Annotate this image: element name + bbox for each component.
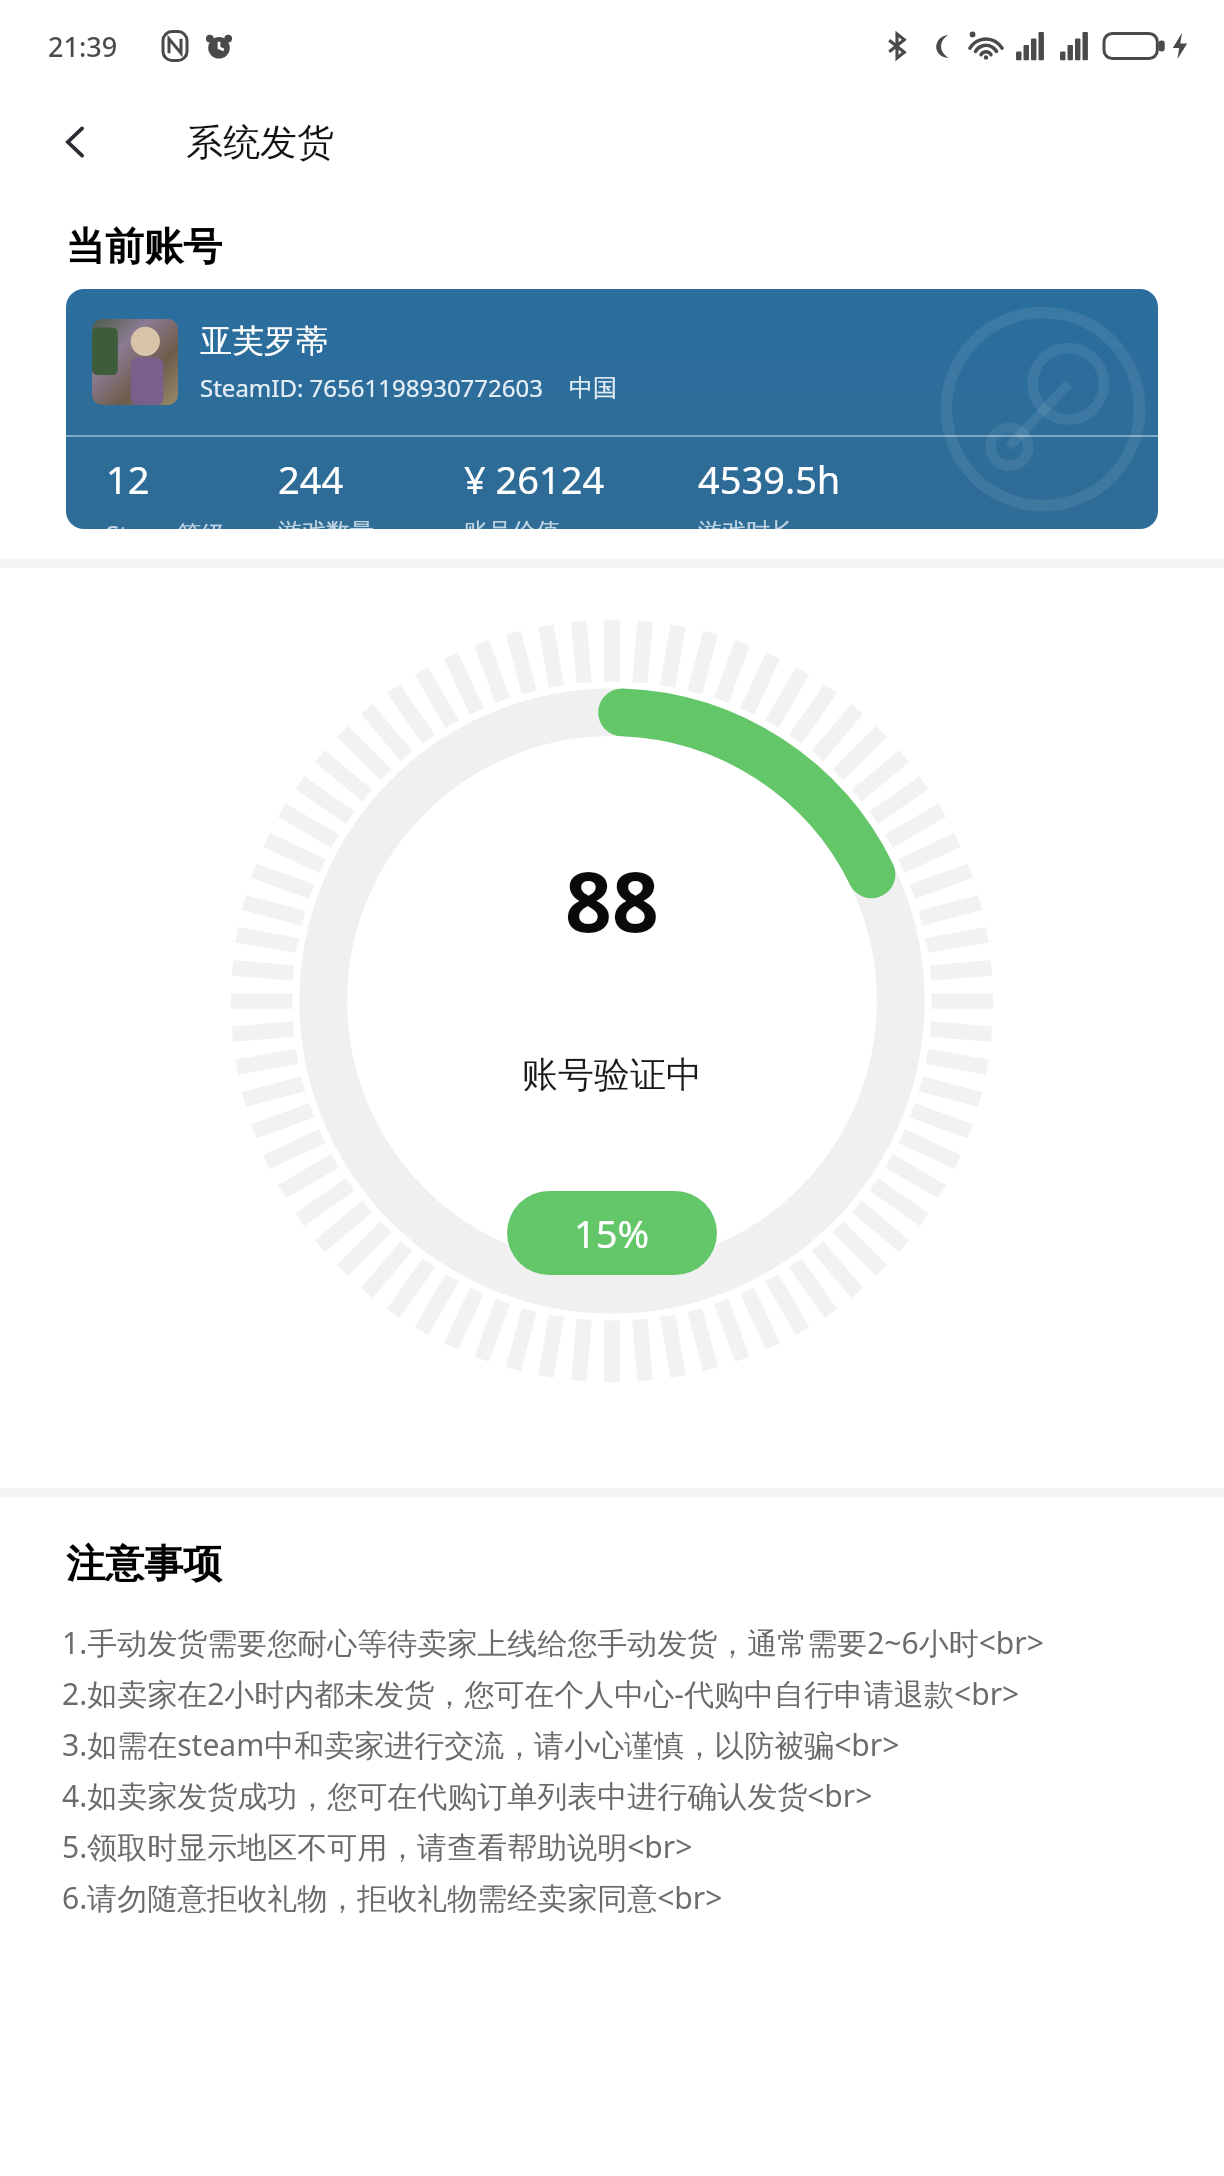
staticText: Steam等级 — [106, 517, 226, 529]
staticText: 1.手动发货需要您耐心等待卖家上线给您手动发货，通常需要2~6小时<br> — [62, 1622, 1044, 1663]
staticText: 账号验证中 — [522, 1052, 702, 1097]
staticText: 游戏数量 — [278, 517, 374, 529]
staticText: 游戏时长 — [698, 517, 794, 529]
staticText: 3.如需在steam中和卖家进行交流，请小心谨慎，以防被骗<br> — [62, 1724, 900, 1765]
button[interactable]: 亚芙罗蒂 — [66, 289, 1158, 529]
staticText: 21:39 — [48, 28, 118, 65]
staticText: 当前账号 — [66, 222, 222, 271]
staticText: 6.请勿随意拒收礼物，拒收礼物需经卖家同意<br> — [62, 1877, 723, 1918]
staticText: 2.如卖家在2小时内都未发货，您可在个人中心-代购中自行申请退款<br> — [62, 1673, 1020, 1714]
staticText: 账号价值 — [464, 517, 560, 529]
button[interactable]: Back — [48, 114, 104, 170]
staticText: 亚芙罗蒂 — [200, 321, 328, 361]
staticText: 12 — [106, 453, 150, 505]
staticText: ¥ 26124 — [464, 453, 605, 505]
staticText: 系统发货 — [186, 119, 334, 166]
staticText: 4.如卖家发货成功，您可在代购订单列表中进行确认发货<br> — [62, 1775, 873, 1816]
staticText: 88 — [565, 844, 659, 956]
staticText: 注意事项 — [66, 1539, 222, 1588]
staticText: 15% — [574, 1207, 650, 1259]
staticText: 4539.5h — [698, 453, 841, 505]
staticText: 中国 — [569, 373, 617, 403]
staticText: 244 — [278, 453, 344, 505]
staticText: 5.领取时显示地区不可用，请查看帮助说明<br> — [62, 1826, 693, 1867]
staticText: SteamID: 76561198930772603 — [200, 371, 543, 404]
button[interactable]: 15% — [507, 1191, 717, 1275]
